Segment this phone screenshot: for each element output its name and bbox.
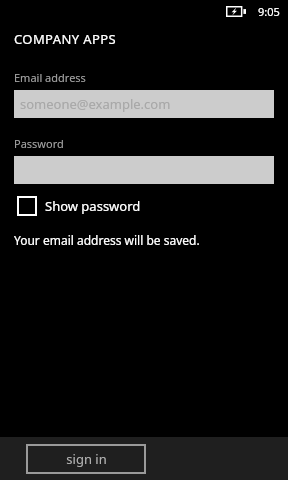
staticText: Show password	[45, 197, 141, 215]
staticText: Email address	[14, 70, 86, 85]
button[interactable]: sign in	[26, 444, 146, 474]
staticText: someone@example.com	[20, 95, 171, 113]
button[interactable]: Show password	[17, 194, 141, 218]
staticText: Password	[14, 136, 64, 151]
other: Battery charging	[226, 6, 246, 17]
staticText: Your email address will be saved.	[14, 232, 200, 248]
button[interactable]: someone@example.com	[14, 90, 274, 118]
staticText: 9:05	[258, 4, 280, 19]
staticText: sign in	[66, 450, 107, 468]
staticText: COMPANY APPS	[14, 30, 117, 48]
